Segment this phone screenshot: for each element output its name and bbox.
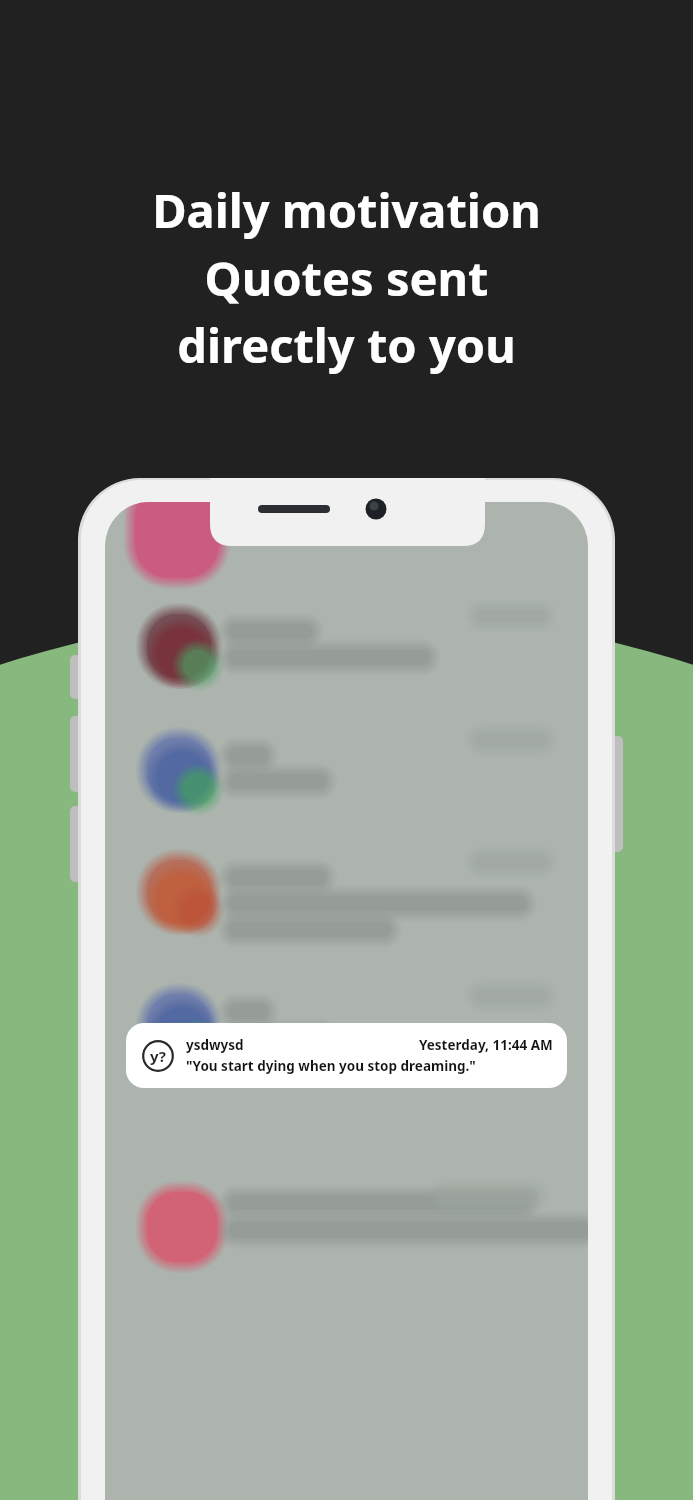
- staticText: ysdwysd: [186, 1036, 244, 1054]
- staticText: Daily motivation Quotes sent directly to…: [152, 178, 541, 376]
- staticText: Yesterday, 11:44 AM: [419, 1036, 553, 1054]
- staticText: y?: [150, 1046, 167, 1066]
- other: ysdwysd app icon: [140, 1038, 176, 1074]
- staticText: "You start dying when you stop dreaming.…: [186, 1057, 476, 1075]
- button[interactable]: ysdwysd app icon: [126, 1023, 567, 1088]
